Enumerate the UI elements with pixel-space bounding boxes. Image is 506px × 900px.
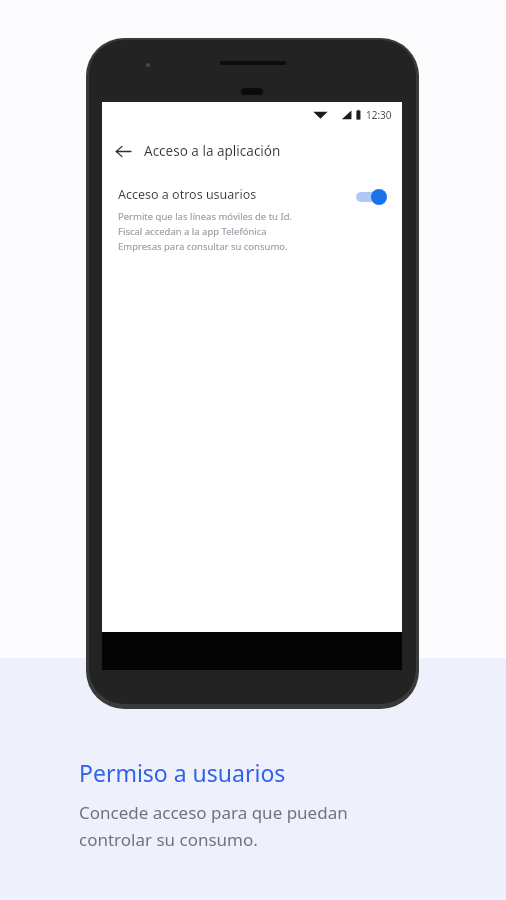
staticText: 12:30 — [366, 108, 392, 122]
staticText: Acceso a la aplicación — [144, 142, 281, 160]
button[interactable]: Back — [102, 130, 144, 172]
staticText: Permite que las líneas móviles de tu Id.… — [118, 210, 293, 253]
staticText: Acceso a otros usuarios — [118, 186, 257, 203]
button[interactable]: Acceso a otros usuarios — [354, 188, 388, 206]
button[interactable]: Acceso a otros usuarios — [102, 174, 402, 261]
staticText: Concede acceso para que puedan controlar… — [79, 801, 348, 851]
staticText: Permiso a usuarios — [79, 757, 286, 788]
